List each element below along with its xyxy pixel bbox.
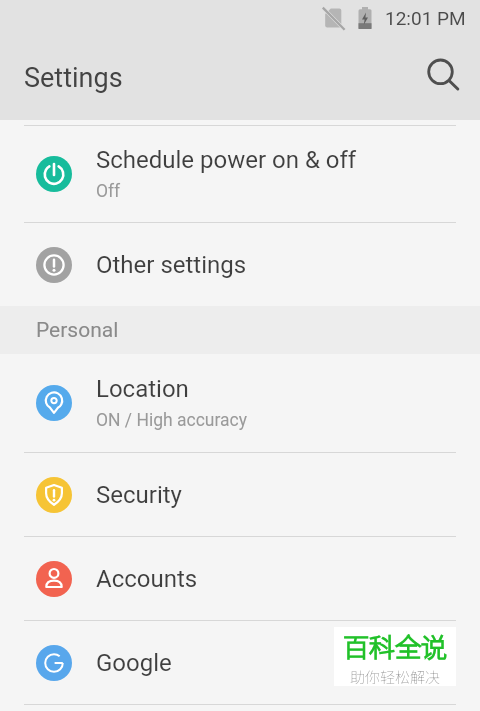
button[interactable]: Google bbox=[0, 621, 480, 704]
staticText: 百科全说 bbox=[343, 627, 448, 665]
button[interactable]: Settings bbox=[24, 62, 123, 94]
button[interactable] bbox=[425, 61, 459, 95]
button[interactable]: Accounts bbox=[0, 537, 480, 620]
staticText: 助你轻松解决 bbox=[350, 666, 441, 686]
staticText: Settings bbox=[24, 62, 123, 94]
staticText: Security bbox=[96, 481, 182, 509]
button[interactable]: Location bbox=[0, 354, 480, 452]
staticText: Schedule power on & off bbox=[96, 146, 357, 174]
staticText: Accounts bbox=[96, 565, 198, 593]
staticText: ON / High accuracy bbox=[96, 410, 248, 431]
button[interactable]: Other settings bbox=[0, 223, 480, 306]
staticText: 12:01 PM bbox=[385, 7, 466, 29]
staticText: Google bbox=[96, 649, 172, 677]
staticText: Personal bbox=[36, 318, 119, 343]
button[interactable]: Security bbox=[0, 453, 480, 536]
staticText: 百科全说 bbox=[343, 627, 448, 665]
staticText: Other settings bbox=[96, 251, 247, 279]
staticText: Location bbox=[96, 375, 189, 403]
button[interactable]: Schedule power on & off bbox=[0, 126, 480, 222]
staticText: Off bbox=[96, 181, 121, 202]
